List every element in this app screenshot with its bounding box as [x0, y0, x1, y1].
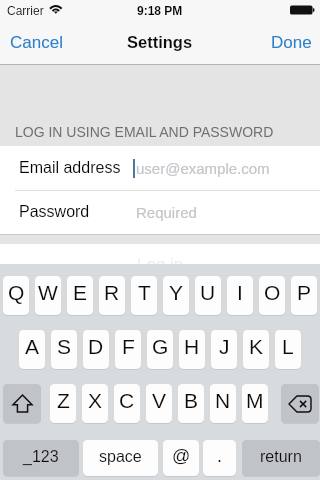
button[interactable]: I — [227, 276, 253, 315]
button[interactable]: Q — [3, 276, 29, 315]
button[interactable]: H — [179, 330, 205, 369]
staticText: W — [38, 281, 58, 304]
button[interactable]: K — [243, 330, 269, 369]
staticText: I — [237, 281, 243, 304]
staticText: Password — [19, 203, 90, 221]
button[interactable]: U — [195, 276, 221, 315]
staticText: R — [104, 281, 120, 304]
button[interactable]: return — [242, 440, 320, 476]
staticText: . — [217, 446, 223, 466]
button[interactable]: A — [19, 330, 45, 369]
staticText: J — [219, 335, 230, 358]
staticText: Cancel — [10, 33, 63, 52]
button[interactable]: Y — [163, 276, 189, 315]
staticText: A — [25, 335, 40, 358]
staticText: Carrier — [7, 4, 44, 17]
button[interactable]: R — [99, 276, 125, 315]
button[interactable]: D — [83, 330, 109, 369]
staticText: T — [138, 281, 151, 304]
button[interactable]: Done — [259, 20, 320, 64]
staticText: O — [264, 281, 281, 304]
button[interactable]: Cancel — [0, 20, 75, 64]
staticText: S — [57, 335, 72, 358]
staticText: LOG IN USING EMAIL AND PASSWORD — [15, 124, 274, 140]
staticText: Done — [271, 33, 312, 52]
button[interactable]: B — [178, 384, 204, 423]
staticText: Email address — [19, 159, 121, 177]
button[interactable]: O — [259, 276, 285, 315]
button[interactable]: Backspace — [281, 384, 319, 423]
button[interactable]: W — [35, 276, 61, 315]
staticText: return — [260, 448, 302, 466]
staticText: V — [152, 389, 167, 412]
button[interactable]: L — [275, 330, 301, 369]
button[interactable]: E — [67, 276, 93, 315]
button[interactable]: M — [242, 384, 268, 423]
button[interactable]: Z — [50, 384, 76, 423]
button[interactable]: Email address — [0, 146, 320, 190]
staticText: N — [215, 389, 231, 412]
staticText: Z — [57, 389, 70, 412]
staticText: user@example.com — [136, 160, 270, 177]
button[interactable]: T — [131, 276, 157, 315]
staticText: K — [249, 335, 264, 358]
button[interactable]: F — [115, 330, 141, 369]
staticText: E — [73, 281, 88, 304]
staticText: space — [99, 448, 142, 466]
staticText: P — [297, 281, 312, 304]
staticText: X — [88, 389, 103, 412]
staticText: Settings — [127, 33, 193, 51]
button[interactable]: Shift — [3, 384, 41, 423]
staticText: 9:18 PM — [137, 4, 183, 17]
button[interactable]: P — [291, 276, 317, 315]
staticText: Log in — [137, 255, 184, 274]
button[interactable]: _123 — [3, 440, 79, 476]
staticText: B — [184, 389, 199, 412]
staticText: M — [246, 389, 264, 412]
button[interactable]: G — [147, 330, 173, 369]
staticText: H — [184, 335, 200, 358]
staticText: @ — [172, 446, 191, 466]
button[interactable]: C — [114, 384, 140, 423]
button[interactable]: space — [83, 440, 158, 476]
staticText: U — [200, 281, 216, 304]
button[interactable]: @ — [163, 440, 199, 476]
button[interactable]: X — [82, 384, 108, 423]
button[interactable]: V — [146, 384, 172, 423]
staticText: G — [152, 335, 169, 358]
staticText: F — [122, 335, 135, 358]
staticText: L — [282, 335, 294, 358]
staticText: D — [88, 335, 104, 358]
button[interactable]: J — [211, 330, 237, 369]
button[interactable]: S — [51, 330, 77, 369]
staticText: Y — [169, 281, 184, 304]
staticText: Required — [136, 204, 197, 221]
button[interactable]: N — [210, 384, 236, 423]
staticText: _123 — [23, 448, 59, 466]
staticText: Q — [8, 281, 25, 304]
staticText: C — [119, 389, 135, 412]
button[interactable]: . — [203, 440, 236, 476]
button[interactable]: Password — [0, 190, 320, 234]
